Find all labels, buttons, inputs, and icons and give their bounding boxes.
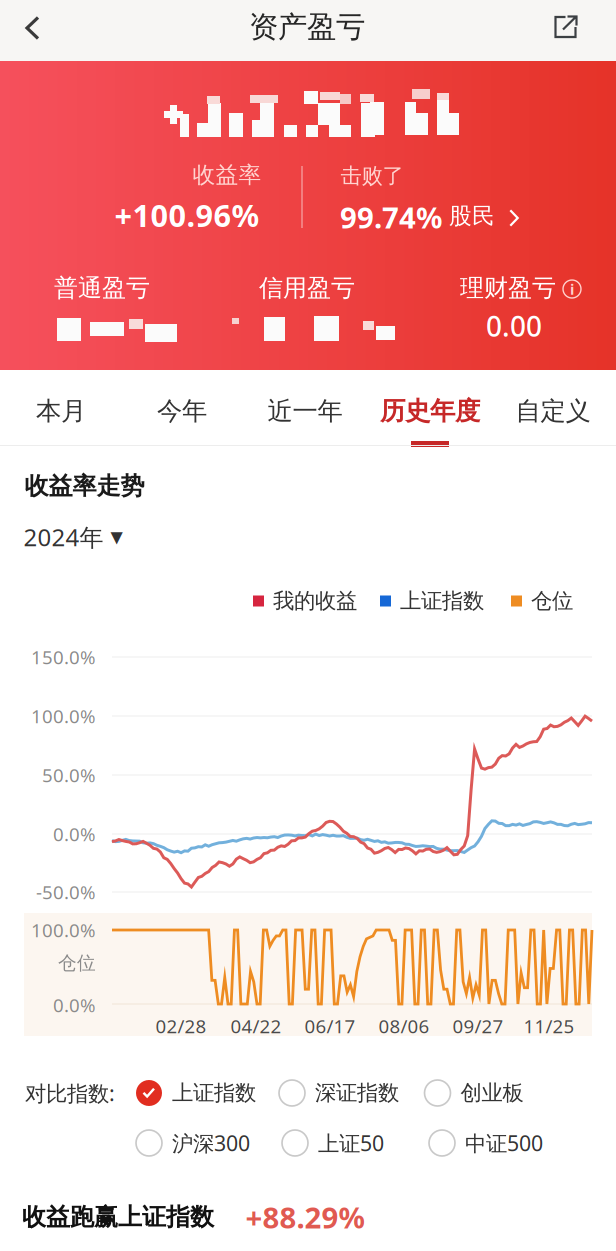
- staticText: 0.00: [486, 307, 542, 345]
- button[interactable]: 沪深300: [136, 1123, 250, 1163]
- staticText: 我的收益: [273, 588, 357, 614]
- staticText: 今年: [157, 395, 207, 426]
- staticText: 中证500: [465, 1129, 543, 1157]
- button[interactable]: 分享: [534, 0, 598, 57]
- staticText: 0.0%: [53, 993, 96, 1017]
- staticText: 上证指数: [172, 1080, 256, 1106]
- button[interactable]: 创业板: [424, 1074, 523, 1112]
- button[interactable]: 历史年度: [371, 370, 489, 446]
- staticText: -50.0%: [36, 880, 96, 904]
- staticText: 100.0%: [31, 704, 96, 728]
- button[interactable]: 上证指数: [136, 1074, 256, 1112]
- staticText: 04/22: [230, 1014, 281, 1038]
- staticText: 深证指数: [315, 1080, 399, 1106]
- staticText: 仓位: [58, 951, 96, 974]
- button[interactable]: 返回: [1, 0, 65, 58]
- button[interactable]: 查看击败排名: [496, 197, 532, 239]
- staticText: 上证指数: [400, 588, 484, 614]
- staticText: 100.0%: [31, 918, 96, 942]
- staticText: 收益跑赢上证指数: [22, 1202, 214, 1232]
- staticText: i: [570, 279, 574, 299]
- staticText: 收益率: [192, 161, 261, 189]
- staticText: 历史年度: [380, 395, 480, 426]
- staticText: 信用盈亏: [259, 273, 355, 303]
- staticText: 06/17: [304, 1014, 355, 1038]
- staticText: 收益率走势: [24, 471, 144, 501]
- button[interactable]: 深证指数: [279, 1074, 399, 1112]
- staticText: 09/27: [452, 1014, 503, 1038]
- staticText: 上证50: [318, 1129, 384, 1157]
- button[interactable]: 本月: [2, 370, 120, 446]
- staticText: 普通盈亏: [54, 273, 150, 303]
- staticText: 0.0%: [53, 822, 96, 846]
- staticText: 理财盈亏: [460, 273, 556, 303]
- staticText: 创业板: [460, 1080, 523, 1106]
- button[interactable]: 自定义: [494, 370, 612, 446]
- staticText: 沪深300: [172, 1129, 250, 1157]
- staticText: 08/06: [378, 1014, 429, 1038]
- staticText: 150.0%: [31, 645, 96, 669]
- button[interactable]: 近一年: [246, 370, 364, 446]
- staticText: 本月: [36, 395, 86, 426]
- staticText: ▼: [110, 528, 122, 546]
- button[interactable]: 上证50: [282, 1123, 384, 1163]
- staticText: 99.74%: [340, 197, 442, 236]
- staticText: +100.96%: [114, 195, 259, 235]
- button[interactable]: 2024年: [21, 513, 124, 561]
- staticText: 股民: [449, 202, 495, 230]
- staticText: +88.29%: [245, 1197, 364, 1236]
- button[interactable]: 今年: [123, 370, 241, 446]
- staticText: 50.0%: [42, 763, 96, 787]
- staticText: 仓位: [531, 588, 573, 614]
- staticText: 自定义: [515, 395, 590, 426]
- button[interactable]: 中证500: [429, 1123, 543, 1163]
- staticText: 资产盈亏: [249, 9, 365, 45]
- staticText: 02/28: [155, 1014, 206, 1038]
- staticText: 11/25: [523, 1014, 574, 1038]
- staticText: 近一年: [267, 395, 342, 426]
- staticText: 2024年: [23, 521, 103, 553]
- staticText: 对比指数:: [25, 1079, 115, 1107]
- staticText: 击败了: [340, 163, 403, 189]
